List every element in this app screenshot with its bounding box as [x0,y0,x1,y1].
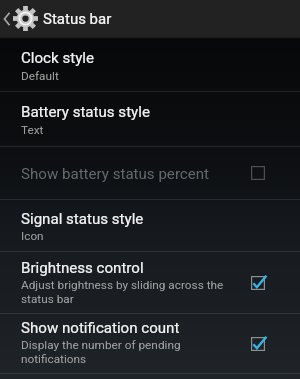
button[interactable]: Brightness control [0,252,300,313]
button[interactable]: Signal status style [0,200,300,251]
button[interactable]: Battery status style [0,92,300,146]
button[interactable]: Show battery status percent [0,147,300,199]
staticText: Status bar [43,10,112,28]
staticText: Display the number of pending notificati… [21,338,229,366]
staticText: Adjust brightness by sliding across the … [21,278,229,306]
staticText: Text [21,123,44,137]
button[interactable]: Show notification count [0,314,300,373]
staticText: Default [21,69,59,83]
staticText: Show notification count [21,319,180,337]
staticText: Clock style [21,49,94,67]
staticText: Signal status style [21,210,144,228]
staticText: Icon [21,229,44,243]
button[interactable]: Clock style [0,39,300,91]
button[interactable]: Navigate up [0,0,38,37]
staticText: Brightness control [21,259,144,277]
staticText: Battery status style [21,103,150,121]
staticText: Show battery status percent [21,165,210,183]
